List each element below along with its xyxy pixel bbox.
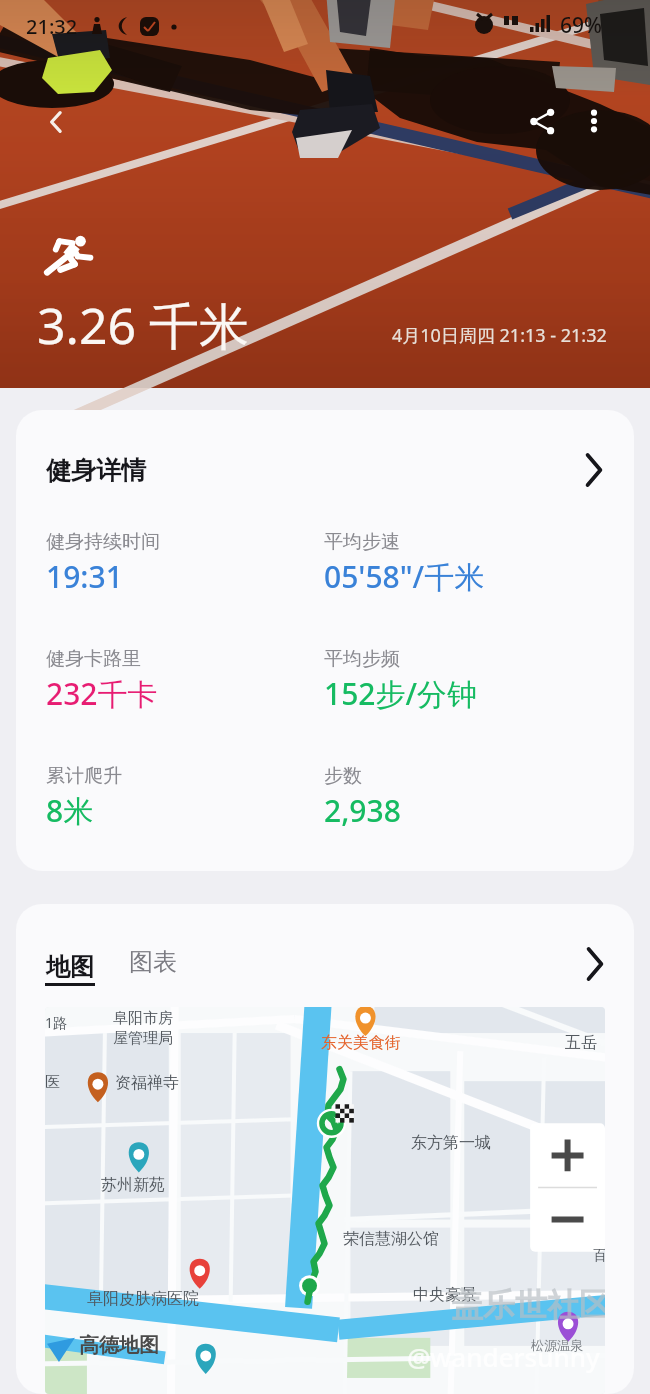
staticText: 东方第一城 xyxy=(411,1133,491,1153)
staticText: 4月10日周四 21:13 - 21:32 xyxy=(392,323,607,348)
staticText: 健身持续时间 xyxy=(46,530,160,554)
staticText: 荣信慧湖公馆 xyxy=(343,1229,439,1249)
staticText: 医 xyxy=(45,1073,60,1092)
staticText: 阜阳市房 xyxy=(113,1009,173,1028)
staticText: 1路 xyxy=(45,1013,68,1032)
staticText: 松源温泉 xyxy=(531,1337,583,1353)
staticText: @wandersunny xyxy=(407,1339,600,1374)
staticText: 步数 xyxy=(324,764,362,788)
staticText: 图表 xyxy=(129,947,177,977)
button[interactable]: 图表 xyxy=(129,952,177,982)
staticText: 百 xyxy=(593,1247,605,1265)
staticText: 152步/分钟 xyxy=(324,673,478,714)
staticText: 健身详情 xyxy=(46,455,146,486)
button[interactable]: 地图 xyxy=(45,952,95,986)
staticText: 高德地图 xyxy=(79,1333,159,1358)
button[interactable]: 健身详情 xyxy=(16,410,634,530)
staticText: 东关美食街 xyxy=(321,1033,401,1053)
button[interactable]: Share xyxy=(520,99,564,143)
staticText: 21:32 xyxy=(26,13,78,40)
staticText: 平均步速 xyxy=(324,530,400,554)
staticText: 苏州新苑 xyxy=(101,1175,165,1195)
staticText: 69% xyxy=(560,11,602,40)
button[interactable]: Back xyxy=(34,100,78,144)
staticText: 屋管理局 xyxy=(113,1029,173,1048)
staticText: 盖乐世社区 xyxy=(451,1285,605,1325)
staticText: 8米 xyxy=(46,790,94,831)
staticText: 资福禅寺 xyxy=(115,1073,179,1093)
staticText: 地图 xyxy=(46,952,94,982)
staticText: 05'58"/千米 xyxy=(324,556,485,597)
staticText: 19:31 xyxy=(46,556,123,597)
button[interactable]: More options xyxy=(572,99,616,143)
staticText: 阜阳皮肤病医院 xyxy=(87,1289,199,1309)
staticText: 健身卡路里 xyxy=(46,647,141,671)
staticText: 2,938 xyxy=(324,790,401,831)
staticText: 3.26 千米 xyxy=(37,291,250,359)
button[interactable]: 1路 xyxy=(45,1007,605,1394)
staticText: 五岳 xyxy=(565,1033,597,1053)
staticText: 平均步频 xyxy=(324,647,400,671)
staticText: 232千卡 xyxy=(46,673,158,714)
staticText: 中央豪景 xyxy=(413,1285,477,1305)
staticText: 累计爬升 xyxy=(46,764,122,788)
